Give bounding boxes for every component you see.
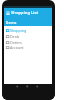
staticText: Orders: [10, 40, 22, 45]
staticText: Shopping List: [11, 10, 39, 16]
button[interactable]: Orders: [4, 39, 52, 45]
button[interactable]: Account: [4, 44, 52, 50]
button[interactable]: Open navigation drawer: [6, 11, 10, 15]
staticText: Items: [6, 20, 17, 25]
button[interactable]: Shopping: [4, 27, 52, 33]
button[interactable]: Deals: [4, 33, 52, 39]
staticText: Deals: [10, 34, 20, 39]
staticText: Shopping: [10, 28, 27, 33]
staticText: Account: [10, 45, 24, 50]
